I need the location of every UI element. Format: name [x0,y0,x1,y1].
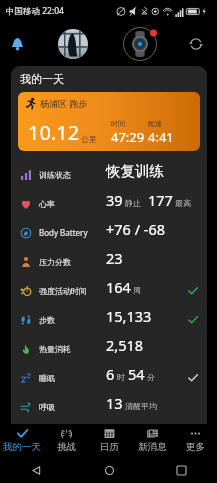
staticText: 步数 [39,315,55,325]
staticText: 2,518 [106,335,144,355]
staticText: 164 [106,277,131,297]
staticText: 配速 [148,119,162,128]
staticText: 心率 [39,199,55,209]
button[interactable]: 呼吸 [11,392,207,421]
staticText: 39 [106,190,123,210]
button[interactable]: 新消息 [131,424,174,457]
button[interactable]: 压力分数 [11,247,207,276]
button[interactable]: Sync [182,30,210,58]
button[interactable]: 心率 [11,189,207,218]
staticText: 分 [147,372,155,382]
staticText: 时 [117,372,125,382]
button[interactable]: Device [122,26,158,62]
staticText: +76 / -68 [106,219,166,239]
button[interactable]: 更多 [174,424,217,457]
staticText: 时间 [111,119,125,128]
staticText: 最高 [175,198,191,208]
button[interactable]: 我的一天 [0,424,44,457]
button[interactable]: 训练状态 [11,160,207,189]
staticText: 睡眠 [39,373,55,383]
button[interactable]: Body Battery [11,218,207,247]
staticText: 47:29 [111,128,145,146]
staticText: 6 [106,364,115,384]
staticText: 中国移动 22:04 [6,5,64,17]
staticText: 日历 [100,441,119,453]
staticText: 训练状态 [39,170,71,180]
staticText: 23 [106,248,123,268]
staticText: 公里 [81,134,97,144]
staticText: 4:41 [148,128,174,146]
button[interactable]: 杨浦区 跑步 [18,92,200,151]
staticText: Body Battery [39,227,88,238]
button[interactable]: 睡眠 [11,363,207,392]
button[interactable]: 强度活动时间 [11,276,207,305]
button[interactable]: Profile [58,29,88,59]
staticText: 13 [106,393,123,413]
staticText: 15,133 [106,306,152,326]
staticText: 呼吸 [39,402,55,412]
staticText: 周 [133,285,141,295]
button[interactable]: 日历 [88,424,131,457]
button[interactable]: 挑战 [44,424,88,457]
button[interactable]: 热量消耗 [11,334,207,363]
button[interactable]: 步数 [11,305,207,334]
staticText: 10.12 [28,119,80,146]
staticText: 54 [128,364,145,384]
staticText: 更多 [186,441,205,453]
staticText: 挑战 [57,441,76,453]
staticText: 我的一天 [20,72,64,86]
staticText: 恢复训练 [106,162,164,180]
staticText: 静止 [125,198,141,208]
staticText: 新消息 [138,441,167,453]
staticText: 压力分数 [39,257,71,267]
button[interactable]: Notifications [3,30,31,58]
staticText: 177 [148,190,173,210]
staticText: 清醒平均 [125,401,157,411]
staticText: 杨浦区 跑步 [40,97,88,109]
staticText: 我的一天 [3,441,41,453]
staticText: 强度活动时间 [39,286,87,296]
staticText: 热量消耗 [39,344,71,354]
